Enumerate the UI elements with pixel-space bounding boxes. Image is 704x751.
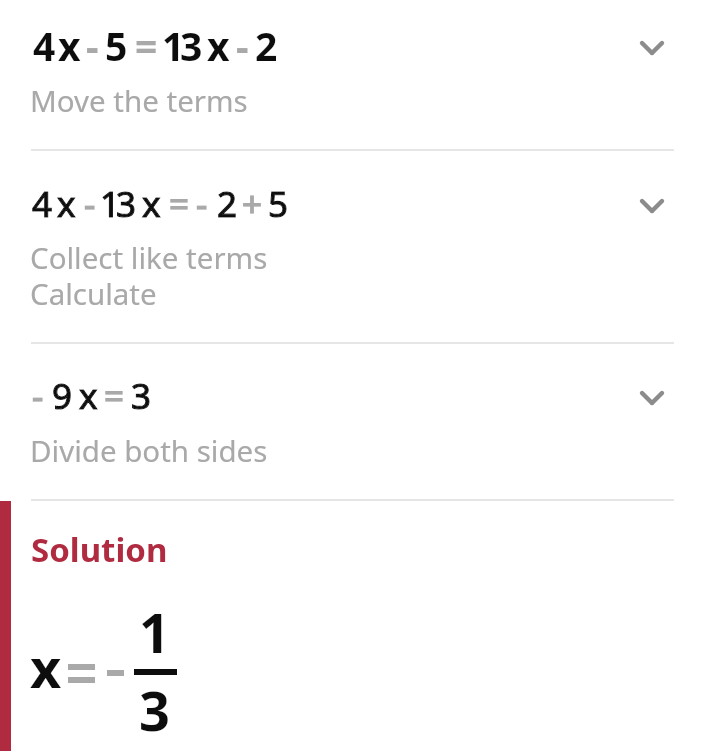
staticText: -	[32, 372, 44, 420]
button[interactable]: 4	[0, 150, 704, 340]
staticText: Move the terms	[30, 80, 248, 120]
staticText: -	[32, 372, 44, 420]
staticText: -	[86, 19, 99, 72]
button[interactable]: -	[0, 342, 704, 499]
staticText: x	[79, 372, 98, 420]
button[interactable]: 4	[0, 0, 704, 148]
staticText: 4	[32, 180, 53, 228]
staticText: 5	[105, 19, 128, 72]
button[interactable]: Solution	[0, 501, 704, 751]
staticText: 1	[162, 19, 185, 72]
staticText: 9	[52, 372, 73, 420]
staticText: x	[207, 19, 230, 72]
staticText: x	[142, 180, 161, 228]
staticText: -	[196, 180, 208, 228]
staticText: 1	[100, 180, 121, 228]
staticText: +	[242, 180, 263, 228]
staticText: 2	[255, 19, 278, 72]
staticText: x	[79, 372, 98, 420]
button[interactable]: Expand step	[628, 24, 676, 72]
staticText: x	[57, 180, 76, 228]
staticText: 1	[100, 180, 121, 228]
button[interactable]: Expand step	[628, 182, 676, 230]
staticText: x	[142, 180, 161, 228]
staticText: 4	[32, 180, 53, 228]
staticText: x	[30, 630, 62, 704]
staticText: Solution	[31, 527, 168, 572]
staticText: Calculate	[30, 273, 157, 313]
staticText: 2	[217, 180, 238, 228]
staticText: 3	[116, 180, 137, 228]
staticText: 3	[139, 673, 170, 747]
staticText: 4	[33, 19, 56, 72]
staticText: 1	[139, 595, 170, 669]
staticText: Collect like terms	[30, 237, 268, 277]
staticText: +	[242, 180, 263, 228]
staticText: 3	[116, 180, 137, 228]
button[interactable]: Expand step	[628, 374, 676, 422]
staticText: 5	[268, 180, 289, 228]
staticText: Divide both sides	[30, 430, 268, 470]
staticText: 9	[52, 372, 73, 420]
staticText: 2	[217, 180, 238, 228]
staticText: 5	[268, 180, 289, 228]
staticText: =	[135, 19, 158, 72]
staticText: x	[57, 180, 76, 228]
staticText: =	[104, 372, 125, 420]
staticText: -	[84, 180, 96, 228]
staticText: 3	[131, 372, 152, 420]
staticText: =	[104, 372, 125, 420]
staticText: 3	[131, 372, 152, 420]
staticText: -	[84, 180, 96, 228]
staticText: 3	[180, 19, 203, 72]
staticText: =	[169, 180, 190, 228]
staticText: x	[58, 19, 81, 72]
staticText: -	[236, 19, 249, 72]
staticText: -	[196, 180, 208, 228]
staticText: =	[169, 180, 190, 228]
